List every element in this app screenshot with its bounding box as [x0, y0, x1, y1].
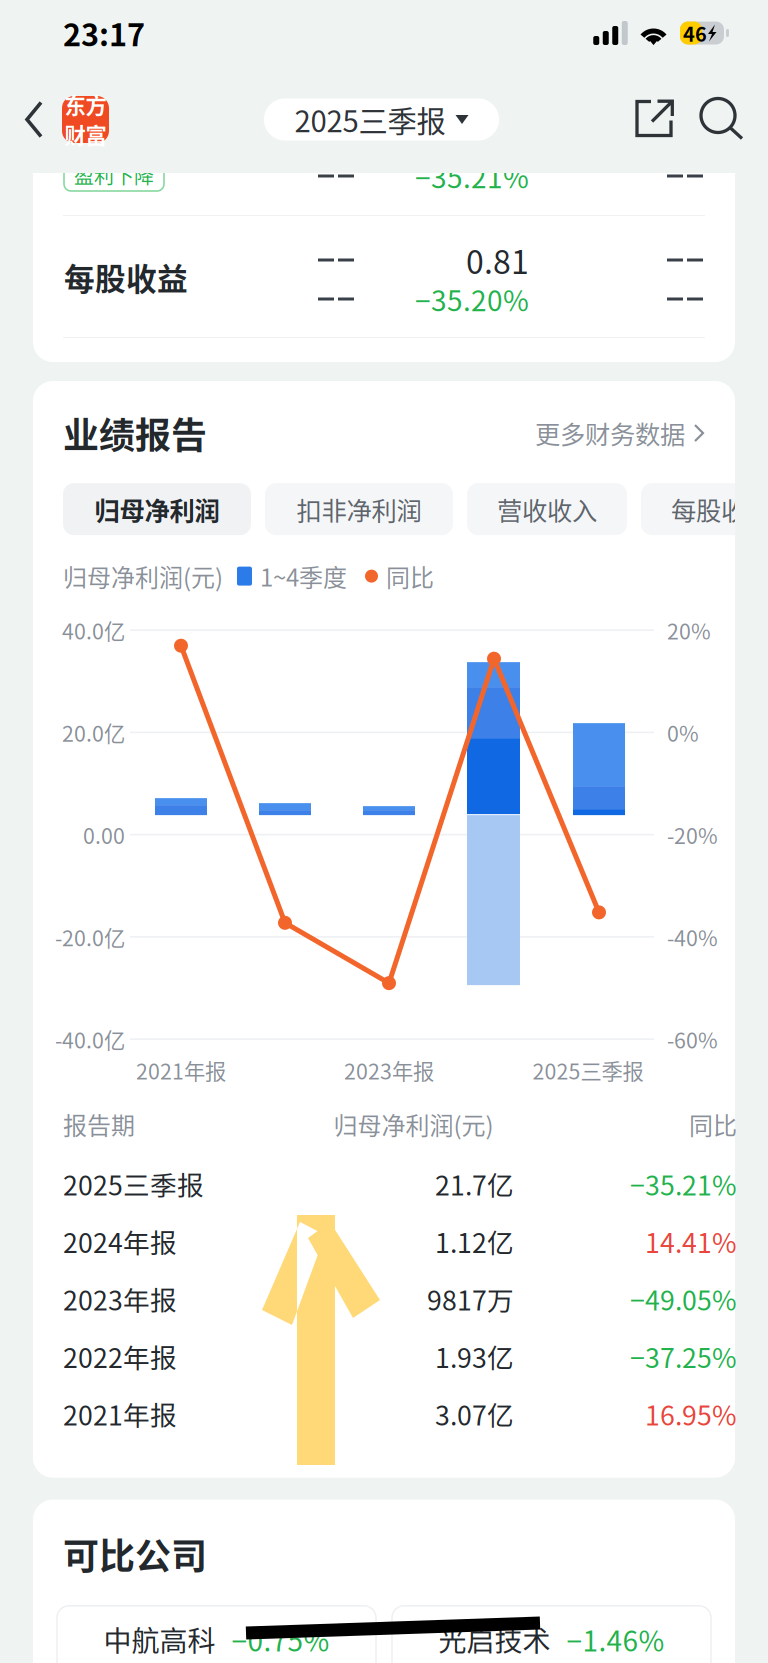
staticText: 2025三季报	[63, 1165, 204, 1203]
staticText: 2025三季报	[294, 98, 445, 141]
staticText: 可比公司	[63, 1528, 207, 1580]
staticText: 富	[85, 119, 106, 150]
staticText: −49.05%	[630, 1280, 737, 1318]
staticText: 0.81	[466, 237, 529, 283]
staticText: 2023年报	[63, 1280, 177, 1318]
staticText: 同比	[689, 1107, 737, 1142]
button[interactable]: Search	[700, 97, 744, 141]
staticText: 同比	[386, 559, 434, 594]
staticText: 每股收益	[64, 255, 188, 299]
staticText: 中航高科	[103, 1619, 215, 1660]
staticText: -20%	[667, 819, 718, 850]
staticText: 2022年报	[63, 1337, 177, 1376]
staticText: 46	[683, 18, 707, 47]
staticText: 营收收入	[497, 491, 597, 527]
staticText: 光启技术	[438, 1619, 550, 1660]
staticText: 0.00	[83, 819, 125, 850]
staticText: 扣非净利润	[296, 491, 421, 527]
staticText: 3.07亿	[435, 1395, 514, 1433]
staticText: 16.95%	[645, 1395, 737, 1433]
staticText: 40.0亿	[62, 615, 125, 646]
button[interactable]: 2025三季报	[264, 98, 499, 140]
staticText: 1~4季度	[260, 559, 347, 594]
button[interactable]: 归母净利润	[63, 483, 251, 535]
staticText: 盈利下降	[74, 160, 154, 189]
staticText: 20%	[667, 615, 711, 646]
button[interactable]: 营收收入	[467, 483, 627, 535]
button[interactable]: 中航高科	[57, 1606, 376, 1663]
staticText: 报告期	[63, 1107, 135, 1142]
staticText: 20.0亿	[62, 717, 125, 748]
staticText: 每股收益	[671, 491, 768, 527]
staticText: -60%	[667, 1024, 718, 1055]
button[interactable]: Back	[0, 98, 62, 140]
button[interactable]: Share	[635, 99, 675, 139]
staticText: 更多财务数据	[535, 415, 685, 451]
staticText: −35.20%	[415, 279, 529, 319]
staticText: 归母净利润(元)	[63, 559, 223, 594]
staticText: 归母净利润(元)	[333, 1107, 493, 1142]
staticText: −35.21%	[415, 156, 529, 196]
staticText: 21.7亿	[435, 1165, 514, 1203]
button[interactable]: 光启技术	[392, 1606, 711, 1663]
button[interactable]: East Money	[62, 96, 109, 143]
staticText: -40.0亿	[55, 1024, 125, 1055]
staticText: -40%	[667, 921, 718, 952]
staticText: −37.25%	[630, 1337, 737, 1376]
staticText: 2021年报	[136, 1055, 226, 1086]
staticText: −35.21%	[630, 1165, 737, 1203]
staticText: 财	[64, 119, 85, 150]
staticText: 14.41%	[645, 1222, 737, 1261]
staticText: -20.0亿	[55, 921, 125, 952]
button[interactable]: 扣非净利润	[265, 483, 453, 535]
staticText: 业绩报告	[63, 407, 207, 459]
staticText: 2025三季报	[532, 1055, 643, 1086]
staticText: 1.12亿	[435, 1222, 514, 1261]
staticText: −1.46%	[566, 1619, 664, 1660]
staticText: 2023年报	[344, 1055, 434, 1086]
staticText: 2024年报	[63, 1222, 177, 1261]
staticText: 1.93亿	[435, 1337, 514, 1376]
button[interactable]: 每股收益	[641, 483, 768, 535]
staticText: 9817万	[427, 1280, 514, 1318]
staticText: 2021年报	[63, 1395, 177, 1433]
staticText: −0.75%	[231, 1619, 329, 1660]
staticText: 0%	[667, 717, 699, 748]
staticText: 23:17	[63, 11, 145, 55]
staticText: 归母净利润	[94, 491, 219, 527]
staticText: 东	[64, 89, 85, 120]
button[interactable]: 更多财务数据	[535, 415, 705, 451]
staticText: 方	[85, 89, 106, 120]
